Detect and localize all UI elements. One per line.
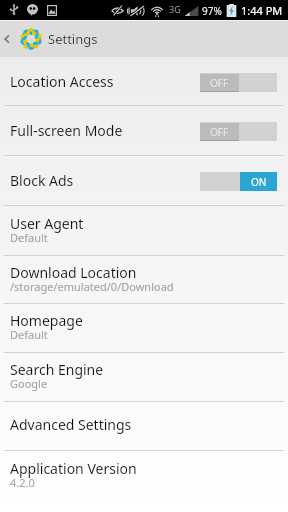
- staticText: Application Version: [10, 459, 137, 478]
- staticText: Google: [10, 376, 48, 391]
- button[interactable]: Full-screen Mode: [0, 106, 288, 155]
- button[interactable]: Homepage: [0, 304, 288, 352]
- staticText: Block Ads: [10, 171, 74, 190]
- staticText: 3G: [169, 3, 181, 15]
- button[interactable]: Back: [0, 21, 288, 57]
- staticText: User Agent: [10, 214, 84, 233]
- other: Off: [200, 122, 277, 141]
- button[interactable]: Search Engine: [0, 353, 288, 401]
- button[interactable]: Block Ads: [0, 156, 288, 205]
- staticText: Settings: [48, 30, 98, 48]
- staticText: OFF: [210, 76, 229, 90]
- other: Back: [1, 33, 13, 45]
- staticText: Full-screen Mode: [10, 121, 123, 140]
- staticText: 4.2.0: [10, 475, 35, 490]
- other: On: [200, 172, 277, 191]
- button[interactable]: Application Version: [0, 451, 288, 500]
- button[interactable]: Location Access: [0, 57, 288, 105]
- staticText: Location Access: [10, 72, 114, 91]
- staticText: Default: [10, 230, 48, 245]
- staticText: ON: [251, 175, 267, 189]
- staticText: 1:44 PM: [241, 3, 283, 18]
- staticText: Advanced Settings: [10, 415, 132, 434]
- staticText: 97%: [202, 4, 222, 18]
- staticText: Homepage: [10, 311, 83, 330]
- staticText: Default: [10, 327, 48, 342]
- button[interactable]: Advanced Settings: [0, 402, 288, 450]
- staticText: /storage/emulated/0/Download: [10, 279, 174, 294]
- button[interactable]: Download Location: [0, 256, 288, 303]
- staticText: Download Location: [10, 263, 137, 282]
- other: Off: [200, 73, 277, 92]
- button[interactable]: User Agent: [0, 206, 288, 255]
- staticText: OFF: [210, 125, 229, 139]
- staticText: Search Engine: [10, 360, 104, 379]
